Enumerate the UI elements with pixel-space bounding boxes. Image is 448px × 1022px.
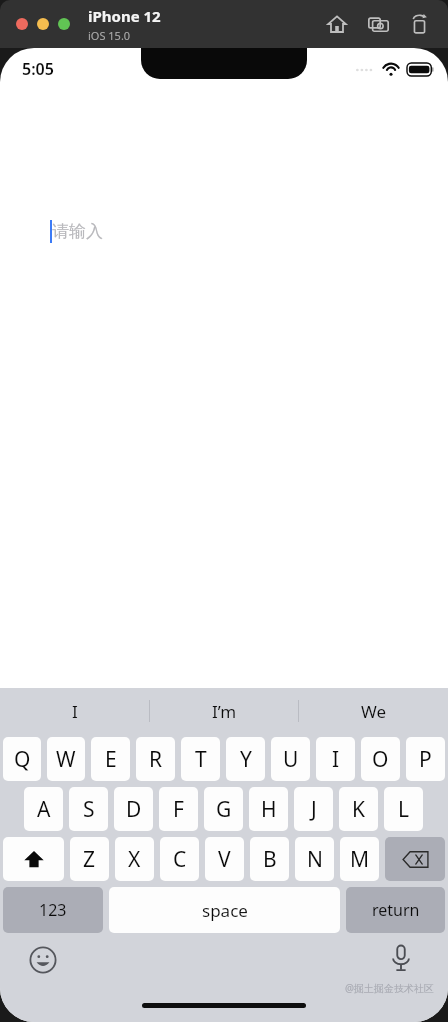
staticText: B	[263, 845, 277, 874]
button[interactable]: space	[109, 887, 340, 933]
staticText: 请输入	[52, 221, 103, 242]
button[interactable]: C	[160, 837, 199, 881]
staticText: F	[173, 795, 184, 824]
button[interactable]: I	[0, 688, 150, 734]
button[interactable]: O	[361, 737, 400, 781]
staticText: return	[372, 899, 420, 921]
button[interactable]: L	[384, 787, 423, 831]
button[interactable]: I’m	[150, 688, 299, 734]
staticText: H	[261, 795, 277, 824]
button[interactable]: T	[181, 737, 220, 781]
staticText: G	[216, 795, 232, 824]
staticText: 5:05	[22, 58, 54, 80]
button[interactable]	[16, 18, 28, 30]
button[interactable]: S	[69, 787, 108, 831]
button[interactable]: We	[299, 688, 448, 734]
button[interactable]: V	[205, 837, 244, 881]
staticText: iPhone 12	[88, 6, 161, 26]
button[interactable]: return	[346, 887, 445, 933]
button[interactable]: D	[114, 787, 153, 831]
button[interactable]: U	[271, 737, 310, 781]
button[interactable]: K	[339, 787, 378, 831]
button[interactable]: B	[250, 837, 289, 881]
button[interactable]: G	[204, 787, 243, 831]
button[interactable]: Z	[70, 837, 109, 881]
button[interactable]: J	[294, 787, 333, 831]
staticText: A	[37, 795, 51, 824]
button[interactable]: P	[406, 737, 445, 781]
button[interactable]: I	[316, 737, 355, 781]
staticText: U	[283, 745, 299, 774]
button[interactable]: F	[159, 787, 198, 831]
button[interactable]: H	[249, 787, 288, 831]
staticText: Q	[14, 745, 31, 774]
staticText: T	[195, 745, 207, 774]
button[interactable]	[58, 18, 70, 30]
button[interactable]: A	[24, 787, 63, 831]
button[interactable]: Emoji	[26, 943, 60, 977]
staticText: M	[350, 845, 370, 874]
staticText: P	[419, 745, 432, 774]
staticText: V	[218, 845, 231, 874]
staticText: iOS 15.0	[88, 28, 131, 43]
button[interactable]: E	[91, 737, 130, 781]
button[interactable]: M	[340, 837, 379, 881]
button[interactable]: Dictate	[384, 941, 418, 975]
button[interactable]: Home	[322, 9, 352, 39]
staticText: C	[173, 845, 187, 874]
staticText: X	[128, 845, 141, 874]
staticText: I	[72, 700, 78, 723]
button[interactable]: Shift	[3, 837, 64, 881]
staticText: Z	[83, 845, 96, 874]
staticText: 123	[39, 899, 67, 921]
staticText: R	[149, 745, 163, 774]
button[interactable]: 123	[3, 887, 103, 933]
button[interactable]: Rotate	[404, 9, 434, 39]
staticText: space	[202, 899, 248, 922]
button[interactable]: W	[47, 737, 85, 781]
button[interactable]: Delete	[385, 837, 445, 881]
staticText: We	[361, 700, 387, 723]
button[interactable]: Q	[3, 737, 41, 781]
button[interactable]: N	[295, 837, 334, 881]
staticText: L	[398, 795, 410, 824]
staticText: S	[83, 795, 95, 824]
staticText: W	[56, 745, 76, 774]
staticText: N	[307, 845, 323, 874]
button[interactable]	[37, 18, 49, 30]
staticText: E	[105, 745, 117, 774]
staticText: I’m	[212, 700, 237, 723]
button[interactable]: Y	[226, 737, 265, 781]
button[interactable]: X	[115, 837, 154, 881]
button[interactable]: R	[136, 737, 175, 781]
staticText: K	[352, 795, 365, 824]
staticText: O	[372, 745, 389, 774]
button[interactable]: 请输入	[50, 220, 103, 243]
staticText: J	[311, 795, 317, 824]
button[interactable]: Screenshot	[363, 9, 393, 39]
staticText: D	[126, 795, 142, 824]
staticText: I	[332, 745, 340, 774]
staticText: @掘土掘金技术社区	[345, 981, 434, 995]
staticText: Y	[240, 745, 252, 774]
